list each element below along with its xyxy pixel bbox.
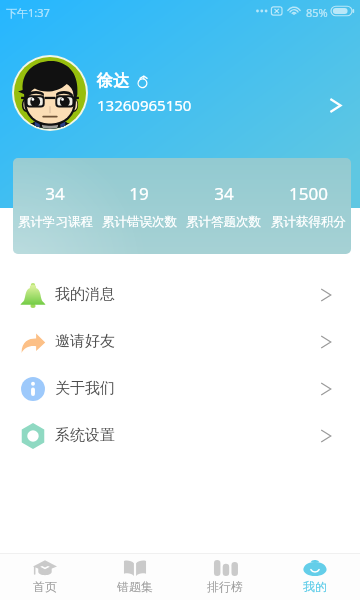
button[interactable]: 关于我们 <box>0 365 360 412</box>
staticText: 下午1:37 <box>6 5 50 20</box>
staticText: 排行榜 <box>207 579 243 594</box>
staticText: 34 <box>45 182 65 205</box>
button[interactable]: 邀请好友 <box>0 318 360 365</box>
staticText: 1500 <box>289 182 328 205</box>
staticText: 累计学习课程 <box>18 214 93 230</box>
staticText: 关于我们 <box>55 379 115 398</box>
staticText: 累计答题次数 <box>186 214 261 230</box>
button[interactable]: 错题集 <box>90 554 180 600</box>
button[interactable]: 系统设置 <box>0 412 360 459</box>
staticText: 34 <box>214 182 234 205</box>
staticText: 我的消息 <box>55 285 115 304</box>
staticText: 徐达 <box>97 71 129 91</box>
staticText: 错题集 <box>117 579 153 594</box>
staticText: 首页 <box>33 579 57 594</box>
button[interactable]: 徐达 <box>0 55 360 131</box>
button[interactable]: 我的消息 <box>0 271 360 318</box>
staticText: 累计错误次数 <box>102 214 177 230</box>
staticText: 系统设置 <box>55 426 115 445</box>
button[interactable]: 首页 <box>0 554 90 600</box>
staticText: 85% <box>306 5 328 20</box>
staticText: 我的 <box>303 579 327 594</box>
staticText: 累计获得积分 <box>271 214 346 230</box>
staticText: 邀请好友 <box>55 332 115 351</box>
staticText: 19 <box>129 182 149 205</box>
button[interactable]: 我的 <box>270 554 360 600</box>
button[interactable]: 排行榜 <box>180 554 270 600</box>
staticText: 13260965150 <box>97 95 192 115</box>
